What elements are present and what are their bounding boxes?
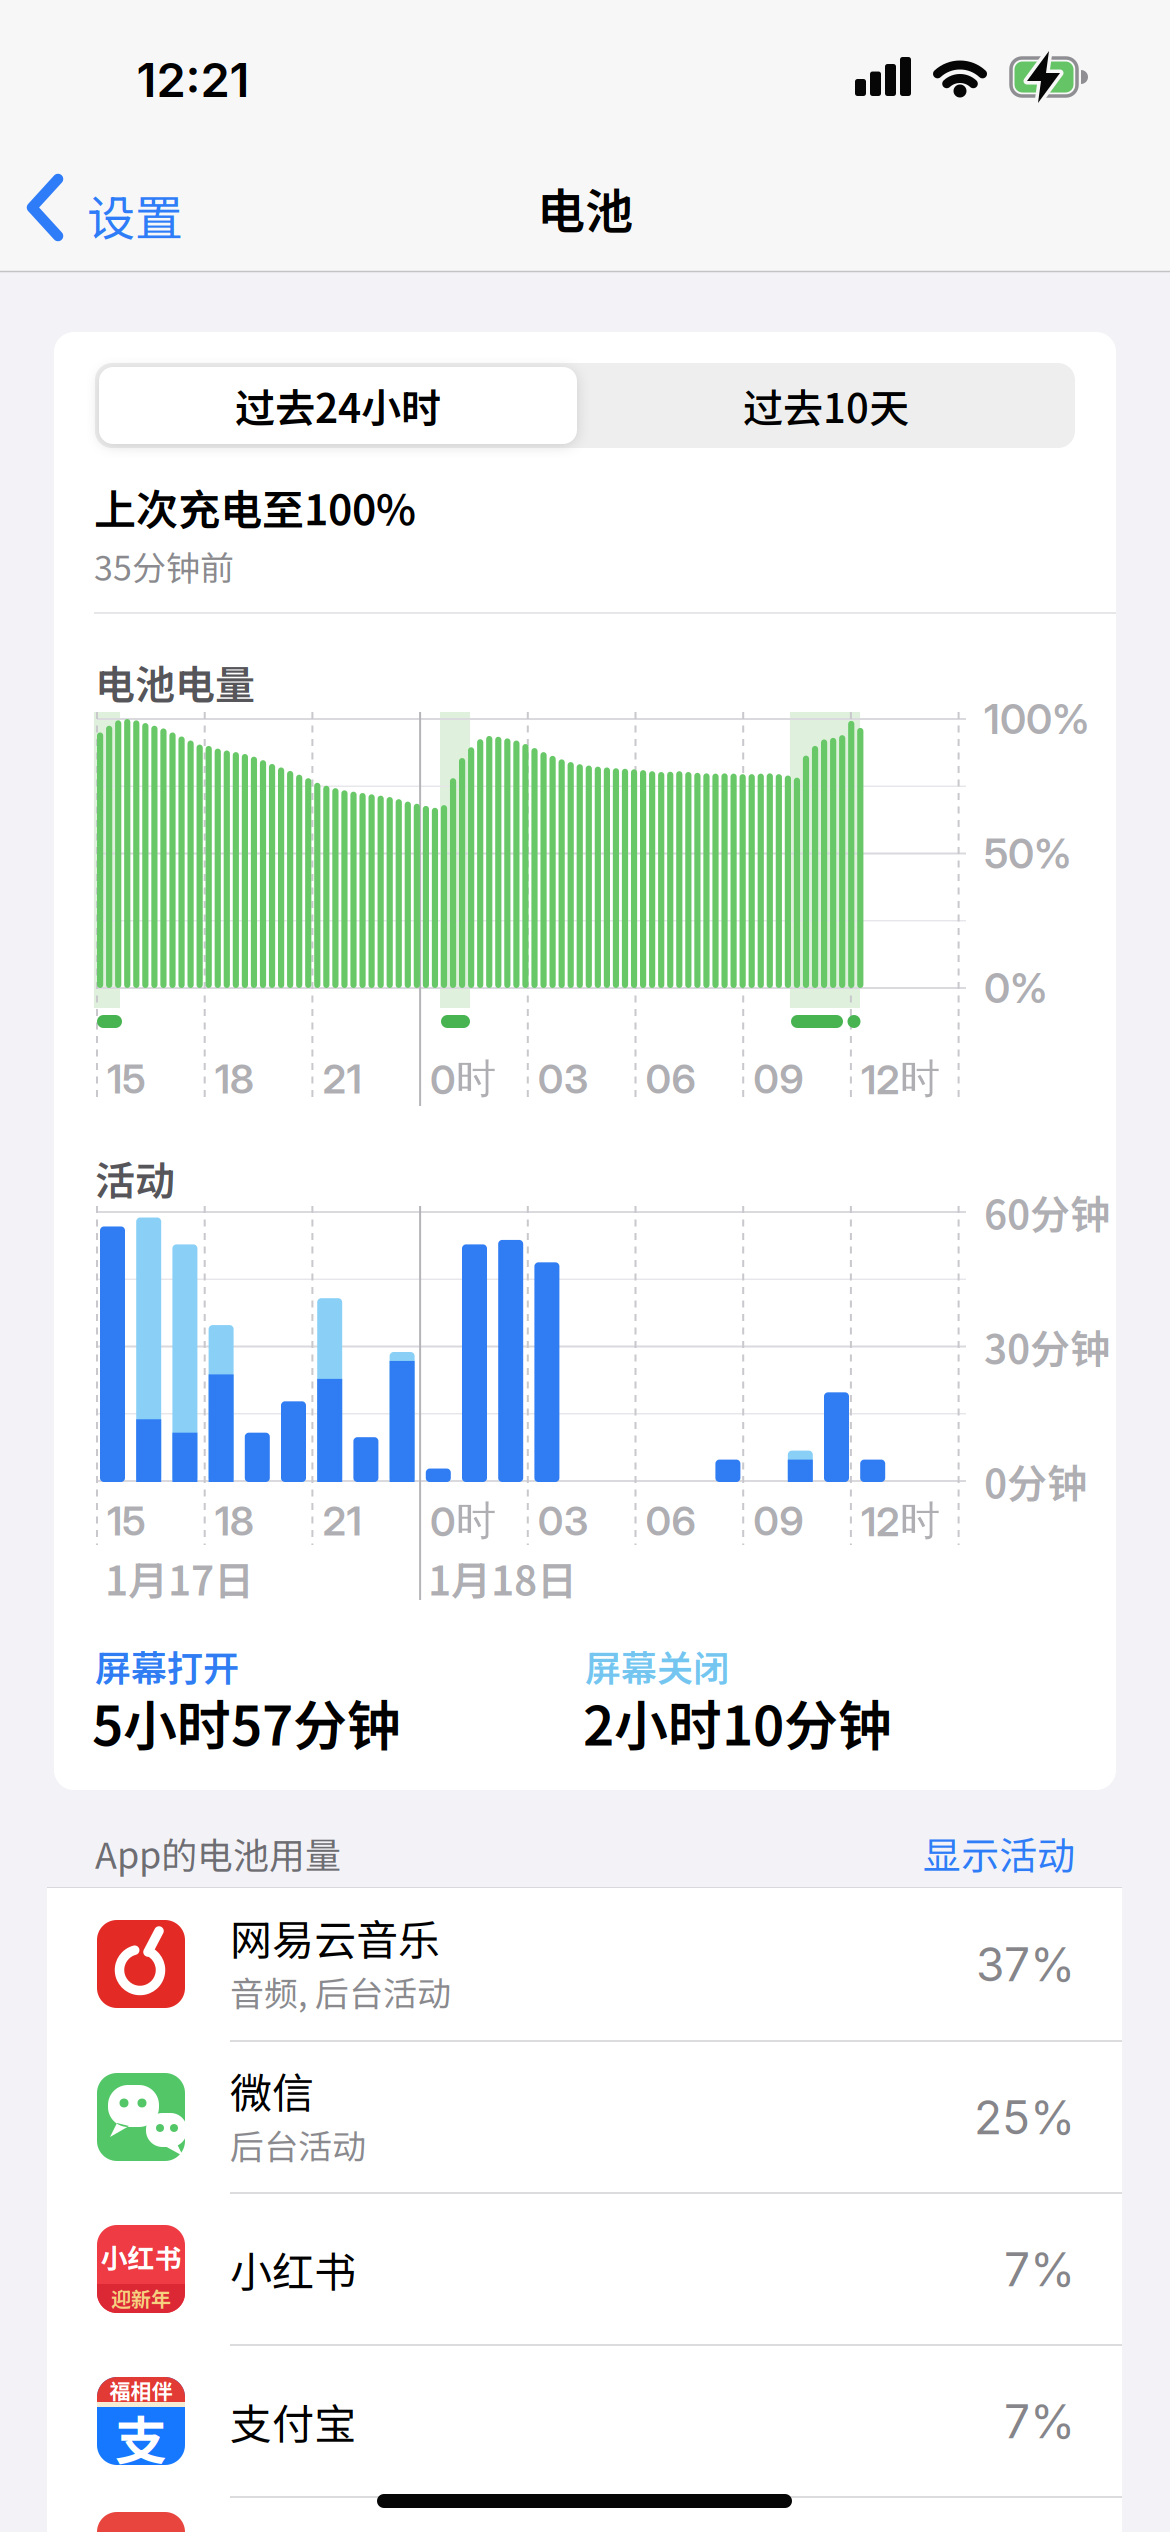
staticText: 37% xyxy=(976,1937,1075,1992)
button[interactable]: 过去10天 xyxy=(581,367,1071,444)
staticText: 小红书 xyxy=(230,2239,356,2300)
button[interactable]: 过去24小时 xyxy=(99,367,577,444)
staticText: 0时 xyxy=(430,1054,496,1104)
staticText: 0% xyxy=(984,963,1047,1013)
staticText: 03 xyxy=(538,1055,589,1103)
staticText: 电池 xyxy=(537,173,633,243)
button[interactable]: 设置 xyxy=(25,174,210,242)
staticText: 60分钟 xyxy=(984,1183,1110,1241)
staticText: 35分钟前 xyxy=(94,541,234,591)
staticText: 音频, 后台活动 xyxy=(230,1967,451,2016)
staticText: 0时 xyxy=(430,1496,496,1546)
staticText: 设置 xyxy=(87,180,183,249)
staticText: 福相伴 xyxy=(109,2375,172,2405)
staticText: 50% xyxy=(984,829,1071,878)
staticText: 06 xyxy=(645,1497,695,1545)
staticText: 上次充电至100% xyxy=(94,477,416,537)
staticText: 显示活动 xyxy=(923,1825,1075,1880)
staticText: 25% xyxy=(974,2090,1075,2145)
staticText: 后台活动 xyxy=(230,2120,366,2169)
staticText: 12时 xyxy=(861,1054,940,1104)
staticText: 12时 xyxy=(861,1496,940,1546)
button[interactable]: 微信 xyxy=(47,2041,1122,2194)
staticText: 迎新年 xyxy=(111,2283,171,2312)
staticText: 2小时10分钟 xyxy=(583,1683,892,1761)
staticText: 屏幕关闭 xyxy=(585,1640,729,1692)
button[interactable]: 福相伴 xyxy=(47,2345,1122,2498)
staticText: 21 xyxy=(322,1497,361,1545)
staticText: 09 xyxy=(753,1497,803,1545)
staticText: 过去24小时 xyxy=(235,376,441,434)
staticText: 过去10天 xyxy=(743,376,909,434)
staticText: 12:21 xyxy=(136,52,249,108)
staticText: 18 xyxy=(215,1497,254,1545)
button[interactable]: 小红书 xyxy=(47,2193,1122,2346)
staticText: 电池电量 xyxy=(95,653,255,711)
staticText: 5小时57分钟 xyxy=(92,1683,401,1761)
staticText: 7% xyxy=(1004,2242,1075,2297)
staticText: 21 xyxy=(322,1055,361,1103)
button[interactable]: 网易云音乐 xyxy=(47,1888,1122,2041)
staticText: 30分钟 xyxy=(984,1317,1110,1375)
staticText: 1月18日 xyxy=(428,1549,577,1607)
staticText: 支付宝 xyxy=(230,2391,356,2452)
staticText: 1月17日 xyxy=(105,1549,254,1607)
staticText: 小红书 xyxy=(100,2237,181,2277)
staticText: 15 xyxy=(107,1497,146,1545)
staticText: 09 xyxy=(753,1055,803,1103)
staticText: 屏幕打开 xyxy=(95,1640,239,1692)
staticText: 网易云音乐 xyxy=(230,1907,440,1968)
staticText: 活动 xyxy=(95,1149,175,1207)
button[interactable]: 显示活动 xyxy=(815,1821,1075,1885)
staticText: 支 xyxy=(115,2399,167,2475)
staticText: 03 xyxy=(538,1497,589,1545)
staticText: 06 xyxy=(645,1055,695,1103)
staticText: 0分钟 xyxy=(984,1452,1087,1510)
staticText: App的电池用量 xyxy=(95,1827,341,1879)
staticText: 7% xyxy=(1004,2394,1075,2449)
staticText: 18 xyxy=(215,1055,254,1103)
staticText: 15 xyxy=(107,1055,146,1103)
staticText: 微信 xyxy=(230,2060,314,2121)
staticText: 100% xyxy=(984,694,1089,744)
